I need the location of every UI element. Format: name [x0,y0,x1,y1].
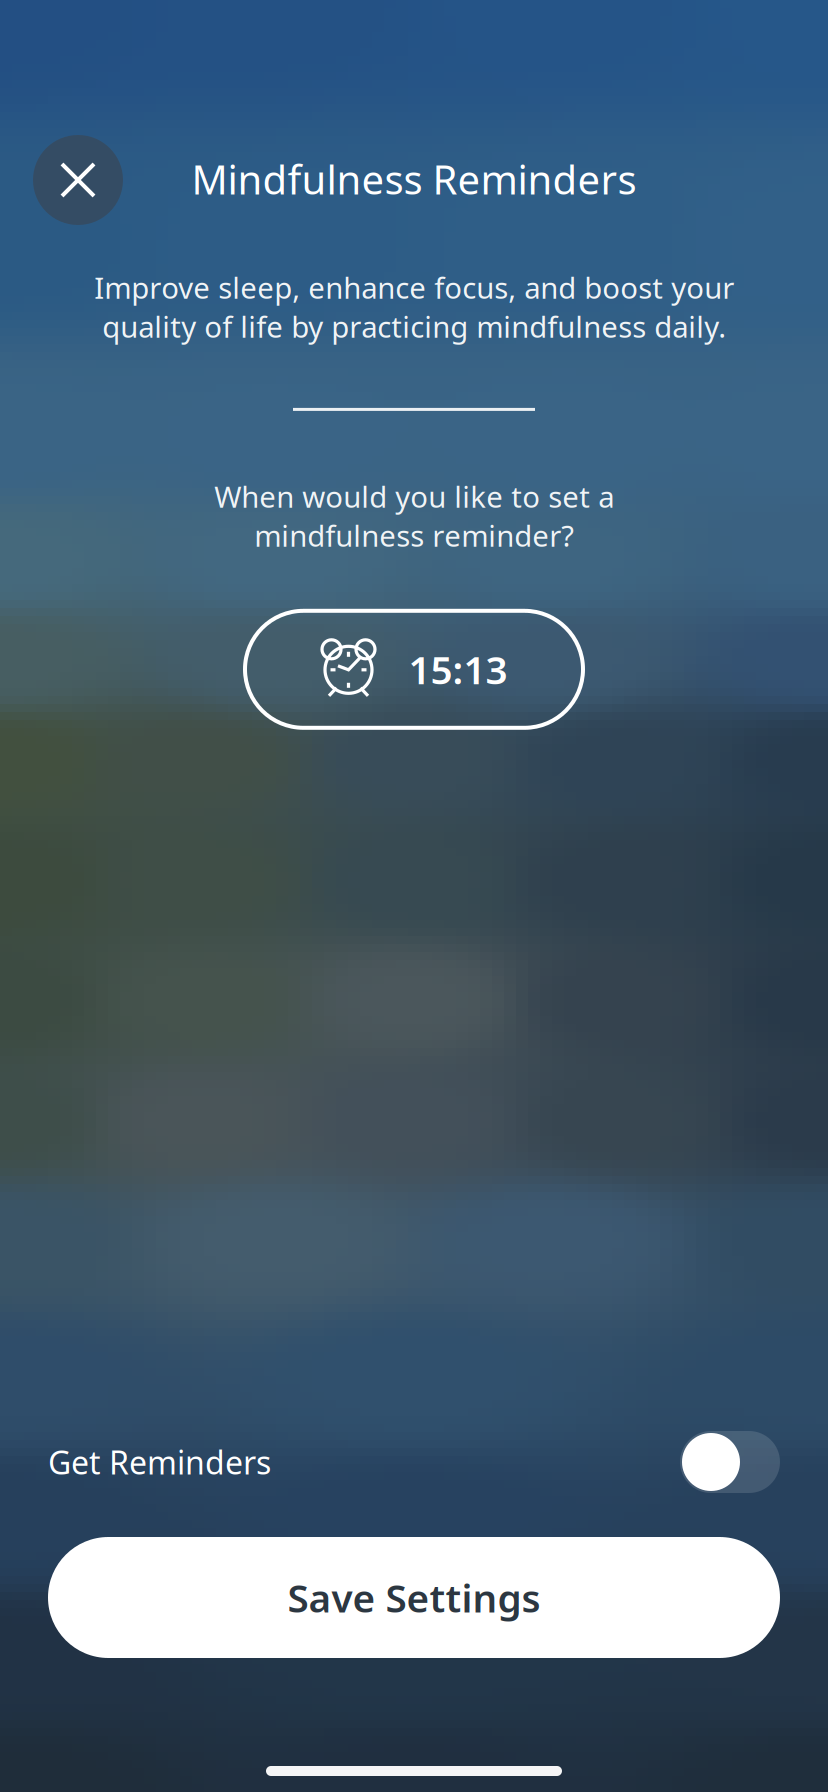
button[interactable]: Close [33,135,123,225]
staticText: Get Reminders [48,1441,271,1483]
staticText: When would you like to set a mindfulness… [214,477,614,555]
button[interactable]: Get Reminders toggle [680,1431,780,1493]
staticText: Mindfulness Reminders [191,152,636,205]
staticText: 15:13 [408,644,507,695]
staticText: Improve sleep, enhance focus, and boost … [94,268,734,346]
button[interactable]: Save Settings [48,1537,780,1658]
button[interactable]: 15:13 [245,611,583,728]
staticText: Save Settings [287,1572,540,1623]
